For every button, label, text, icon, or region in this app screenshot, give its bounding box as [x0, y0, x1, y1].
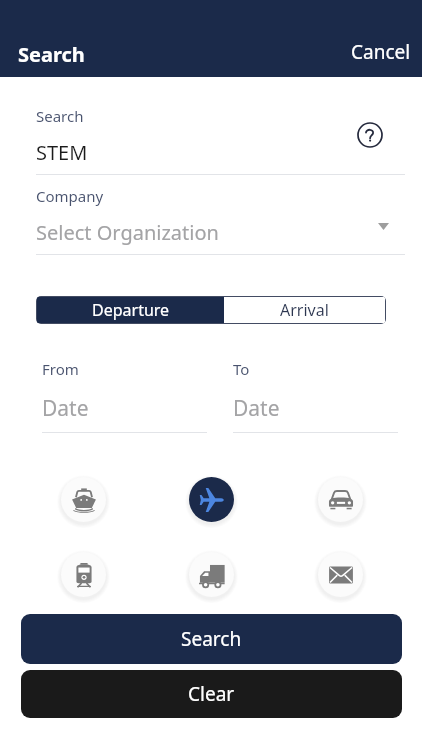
button[interactable]: Select Organization	[36, 212, 405, 252]
button[interactable]: Train	[61, 552, 106, 597]
button[interactable]: Car	[318, 477, 363, 522]
button[interactable]: From	[42, 354, 211, 433]
staticText: To	[233, 359, 250, 379]
staticText: From	[42, 359, 79, 379]
button[interactable]: Search	[21, 614, 402, 664]
button[interactable]: Arrival	[224, 297, 385, 323]
staticText: Company	[36, 186, 104, 206]
staticText: Clear	[188, 681, 235, 707]
staticText: Arrival	[280, 299, 329, 321]
staticText: Search	[181, 626, 242, 652]
staticText: Date	[233, 394, 280, 423]
staticText: Cancel	[351, 39, 411, 65]
button[interactable]: Truck	[189, 552, 234, 597]
staticText: STEM	[36, 139, 88, 166]
button[interactable]: Flight	[189, 477, 234, 522]
button[interactable]: Cancel	[337, 33, 422, 71]
button[interactable]: Clear	[21, 670, 402, 718]
button[interactable]: Help	[356, 121, 384, 149]
staticText: Select Organization	[36, 219, 219, 246]
button[interactable]: Departure	[37, 297, 224, 323]
button[interactable]: To	[233, 354, 402, 433]
button[interactable]: Ship	[61, 477, 106, 522]
staticText: Departure	[92, 299, 170, 321]
staticText: Date	[42, 394, 89, 423]
button[interactable]: Mail	[318, 552, 363, 597]
staticText: Search	[18, 41, 85, 68]
staticText: Search	[36, 106, 84, 126]
